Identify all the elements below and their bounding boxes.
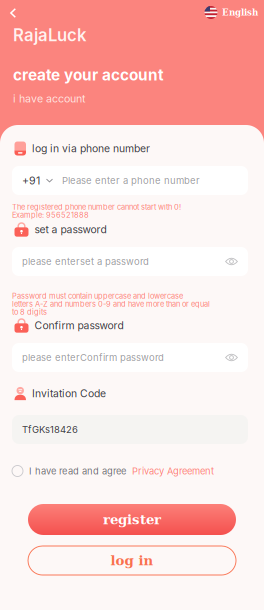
button[interactable]: Back — [0, 0, 24, 22]
staticText: Privacy Agreement — [132, 465, 214, 477]
staticText: to 8 digits — [12, 307, 47, 316]
staticText: I have read and agree — [29, 465, 126, 477]
staticText: Password must contain uppercase and lowe… — [12, 291, 183, 300]
staticText: please enterConfirm password — [22, 352, 164, 363]
staticText: log in — [110, 553, 153, 568]
button[interactable]: I have read and agree — [12, 460, 248, 482]
staticText: please enterset a password — [22, 256, 149, 267]
staticText: create your account — [13, 65, 164, 84]
staticText: +91 — [22, 174, 40, 187]
button[interactable]: English — [204, 0, 264, 22]
staticText: The registered phone number cannot start… — [12, 202, 181, 211]
staticText: i have account — [13, 92, 85, 105]
staticText: TfGKs18426 — [22, 424, 78, 435]
staticText: English — [222, 7, 258, 18]
staticText: RajaLuck — [13, 25, 86, 45]
staticText: Example: 956521888 — [12, 210, 89, 219]
button[interactable]: register — [28, 504, 236, 535]
staticText: letters A-Z and numbers 0-9 and have mor… — [12, 299, 210, 308]
staticText: Confirm password — [34, 319, 123, 332]
button[interactable]: log in — [28, 546, 236, 575]
staticText: Please enter a phone number — [62, 175, 200, 186]
staticText: register — [103, 512, 161, 527]
staticText: set a password — [34, 223, 106, 236]
staticText: Invitation Code — [32, 387, 106, 400]
staticText: log in via phone number — [32, 142, 150, 155]
